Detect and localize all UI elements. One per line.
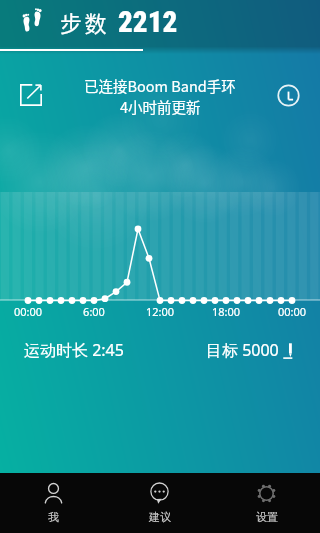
button[interactable]: Share: [20, 84, 42, 106]
staticText: 建议: [149, 510, 171, 524]
staticText: 00:00: [272, 304, 312, 319]
button[interactable]: 建议: [106, 473, 213, 533]
staticText: 2212: [118, 5, 178, 39]
button[interactable]: History: [277, 84, 300, 107]
staticText: 已连接Boom Band手环: [84, 75, 236, 96]
button[interactable]: 设置: [213, 473, 320, 533]
button[interactable]: 目标 5000: [206, 339, 296, 361]
staticText: 6:00: [74, 304, 114, 319]
staticText: 设置: [256, 510, 278, 524]
staticText: 我: [48, 510, 59, 524]
staticText: 步数: [60, 6, 110, 38]
staticText: 目标 5000: [206, 339, 279, 361]
staticText: 18:00: [206, 304, 246, 319]
staticText: 12:00: [140, 304, 180, 319]
staticText: 00:00: [8, 304, 48, 319]
button[interactable]: 我: [0, 473, 106, 533]
staticText: 4小时前更新: [120, 96, 201, 117]
staticText: 运动时长 2:45: [24, 339, 124, 361]
